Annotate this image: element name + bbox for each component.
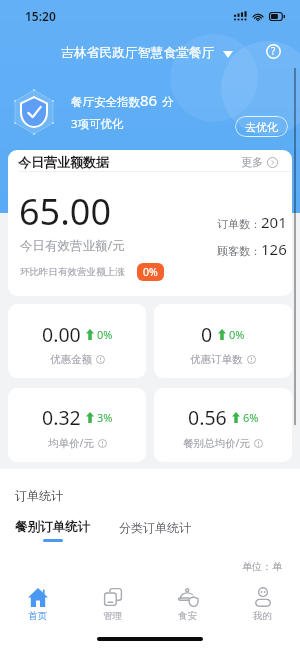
- staticText: 吉林省民政厅智慧食堂餐厅: [61, 45, 215, 61]
- staticText: 0: [201, 321, 213, 348]
- staticText: 3%: [97, 410, 113, 425]
- button[interactable]: 0: [154, 304, 292, 378]
- staticText: 餐别总均价/元: [183, 436, 250, 450]
- staticText: 去优化: [245, 120, 278, 134]
- button[interactable]: 管理: [75, 583, 150, 622]
- staticText: 优惠订单数: [190, 353, 243, 366]
- button[interactable]: 帮助: [261, 39, 285, 63]
- staticText: 分: [162, 95, 174, 109]
- staticText: 65.00: [19, 187, 112, 236]
- staticText: 0.32: [42, 404, 81, 431]
- staticText: 均单价/元: [48, 436, 94, 450]
- staticText: 环比昨日有效营业额上涨: [20, 266, 125, 278]
- staticText: 126: [261, 239, 287, 259]
- staticText: 0%: [143, 265, 158, 279]
- staticText: 201: [261, 212, 287, 232]
- button[interactable]: 我的: [225, 583, 300, 622]
- staticText: 管理: [103, 610, 122, 622]
- staticText: 订单统计: [15, 488, 63, 503]
- button[interactable]: 餐别订单统计: [15, 519, 90, 535]
- staticText: 0%: [229, 327, 245, 342]
- staticText: 优惠金额: [50, 353, 92, 366]
- button[interactable]: 分类订单统计: [119, 520, 191, 535]
- button[interactable]: 食安: [150, 583, 225, 622]
- staticText: 0.56: [188, 404, 227, 431]
- staticText: 订单数：: [217, 217, 261, 231]
- staticText: 6%: [243, 410, 259, 425]
- staticText: ?: [271, 44, 276, 58]
- staticText: 15:20: [25, 8, 56, 24]
- staticText: 86: [140, 90, 158, 110]
- staticText: 餐厅安全指数: [71, 95, 140, 109]
- staticText: 今日有效营业额/元: [20, 237, 125, 254]
- staticText: 顾客数：: [217, 244, 261, 258]
- button[interactable]: 0.56: [154, 388, 292, 462]
- staticText: 今日营业额数据: [18, 154, 109, 170]
- staticText: 0.00: [42, 321, 81, 348]
- button[interactable]: 吉林省民政厅智慧食堂餐厅: [55, 39, 239, 63]
- staticText: 单位：单: [242, 560, 282, 573]
- button[interactable]: 更多: [241, 155, 278, 169]
- button[interactable]: 首页: [0, 583, 75, 622]
- staticText: 0%: [97, 327, 113, 342]
- staticText: 我的: [253, 610, 272, 622]
- staticText: 首页: [28, 610, 47, 622]
- button[interactable]: 0.00: [8, 304, 146, 378]
- button[interactable]: 0.32: [8, 388, 146, 462]
- staticText: 食安: [178, 610, 197, 622]
- button[interactable]: 去优化: [235, 116, 288, 137]
- staticText: 3项可优化: [71, 116, 124, 132]
- staticText: 更多: [241, 155, 263, 169]
